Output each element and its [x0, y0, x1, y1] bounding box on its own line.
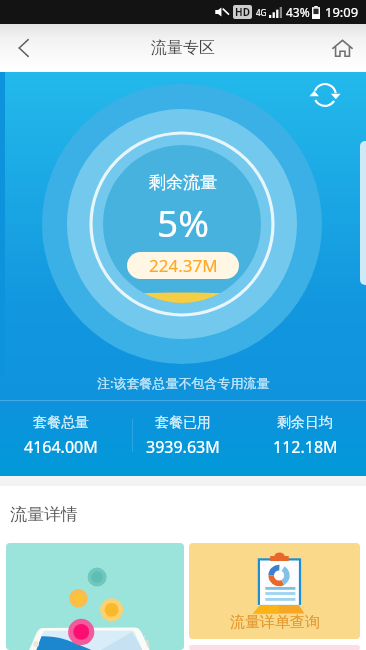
staticText: 流量专区 [151, 38, 215, 58]
staticText: 112.18M [273, 436, 338, 458]
staticText: 剩余日均 [277, 414, 333, 432]
staticText: 4164.00M [24, 436, 98, 458]
staticText: 19:09 [325, 3, 359, 21]
staticText: 流量详情 [10, 504, 78, 525]
staticText: 套餐已用 [155, 414, 211, 432]
button[interactable]: Back [0, 24, 48, 72]
button[interactable]: Refresh [307, 77, 343, 113]
staticText: 套餐总量 [33, 414, 89, 432]
button[interactable]: 套餐总量 [0, 414, 122, 458]
staticText: HD [235, 5, 250, 19]
button[interactable]: 剩余日均 [244, 414, 366, 458]
staticText: 流量详单查询 [230, 613, 320, 632]
button[interactable]: Home [318, 24, 366, 72]
staticText: 剩余流量 [149, 172, 217, 193]
button[interactable] [6, 543, 184, 650]
staticText: 43% [286, 4, 310, 20]
button[interactable]: 流量详单查询 [189, 543, 360, 639]
staticText: 5% [157, 197, 209, 247]
button[interactable]: 套餐已用 [122, 414, 244, 458]
staticText: 3939.63M [146, 436, 220, 458]
staticText: 224.37M [149, 254, 218, 277]
staticText: 4G [256, 7, 267, 18]
staticText: 注:该套餐总量不包含专用流量 [97, 374, 270, 392]
